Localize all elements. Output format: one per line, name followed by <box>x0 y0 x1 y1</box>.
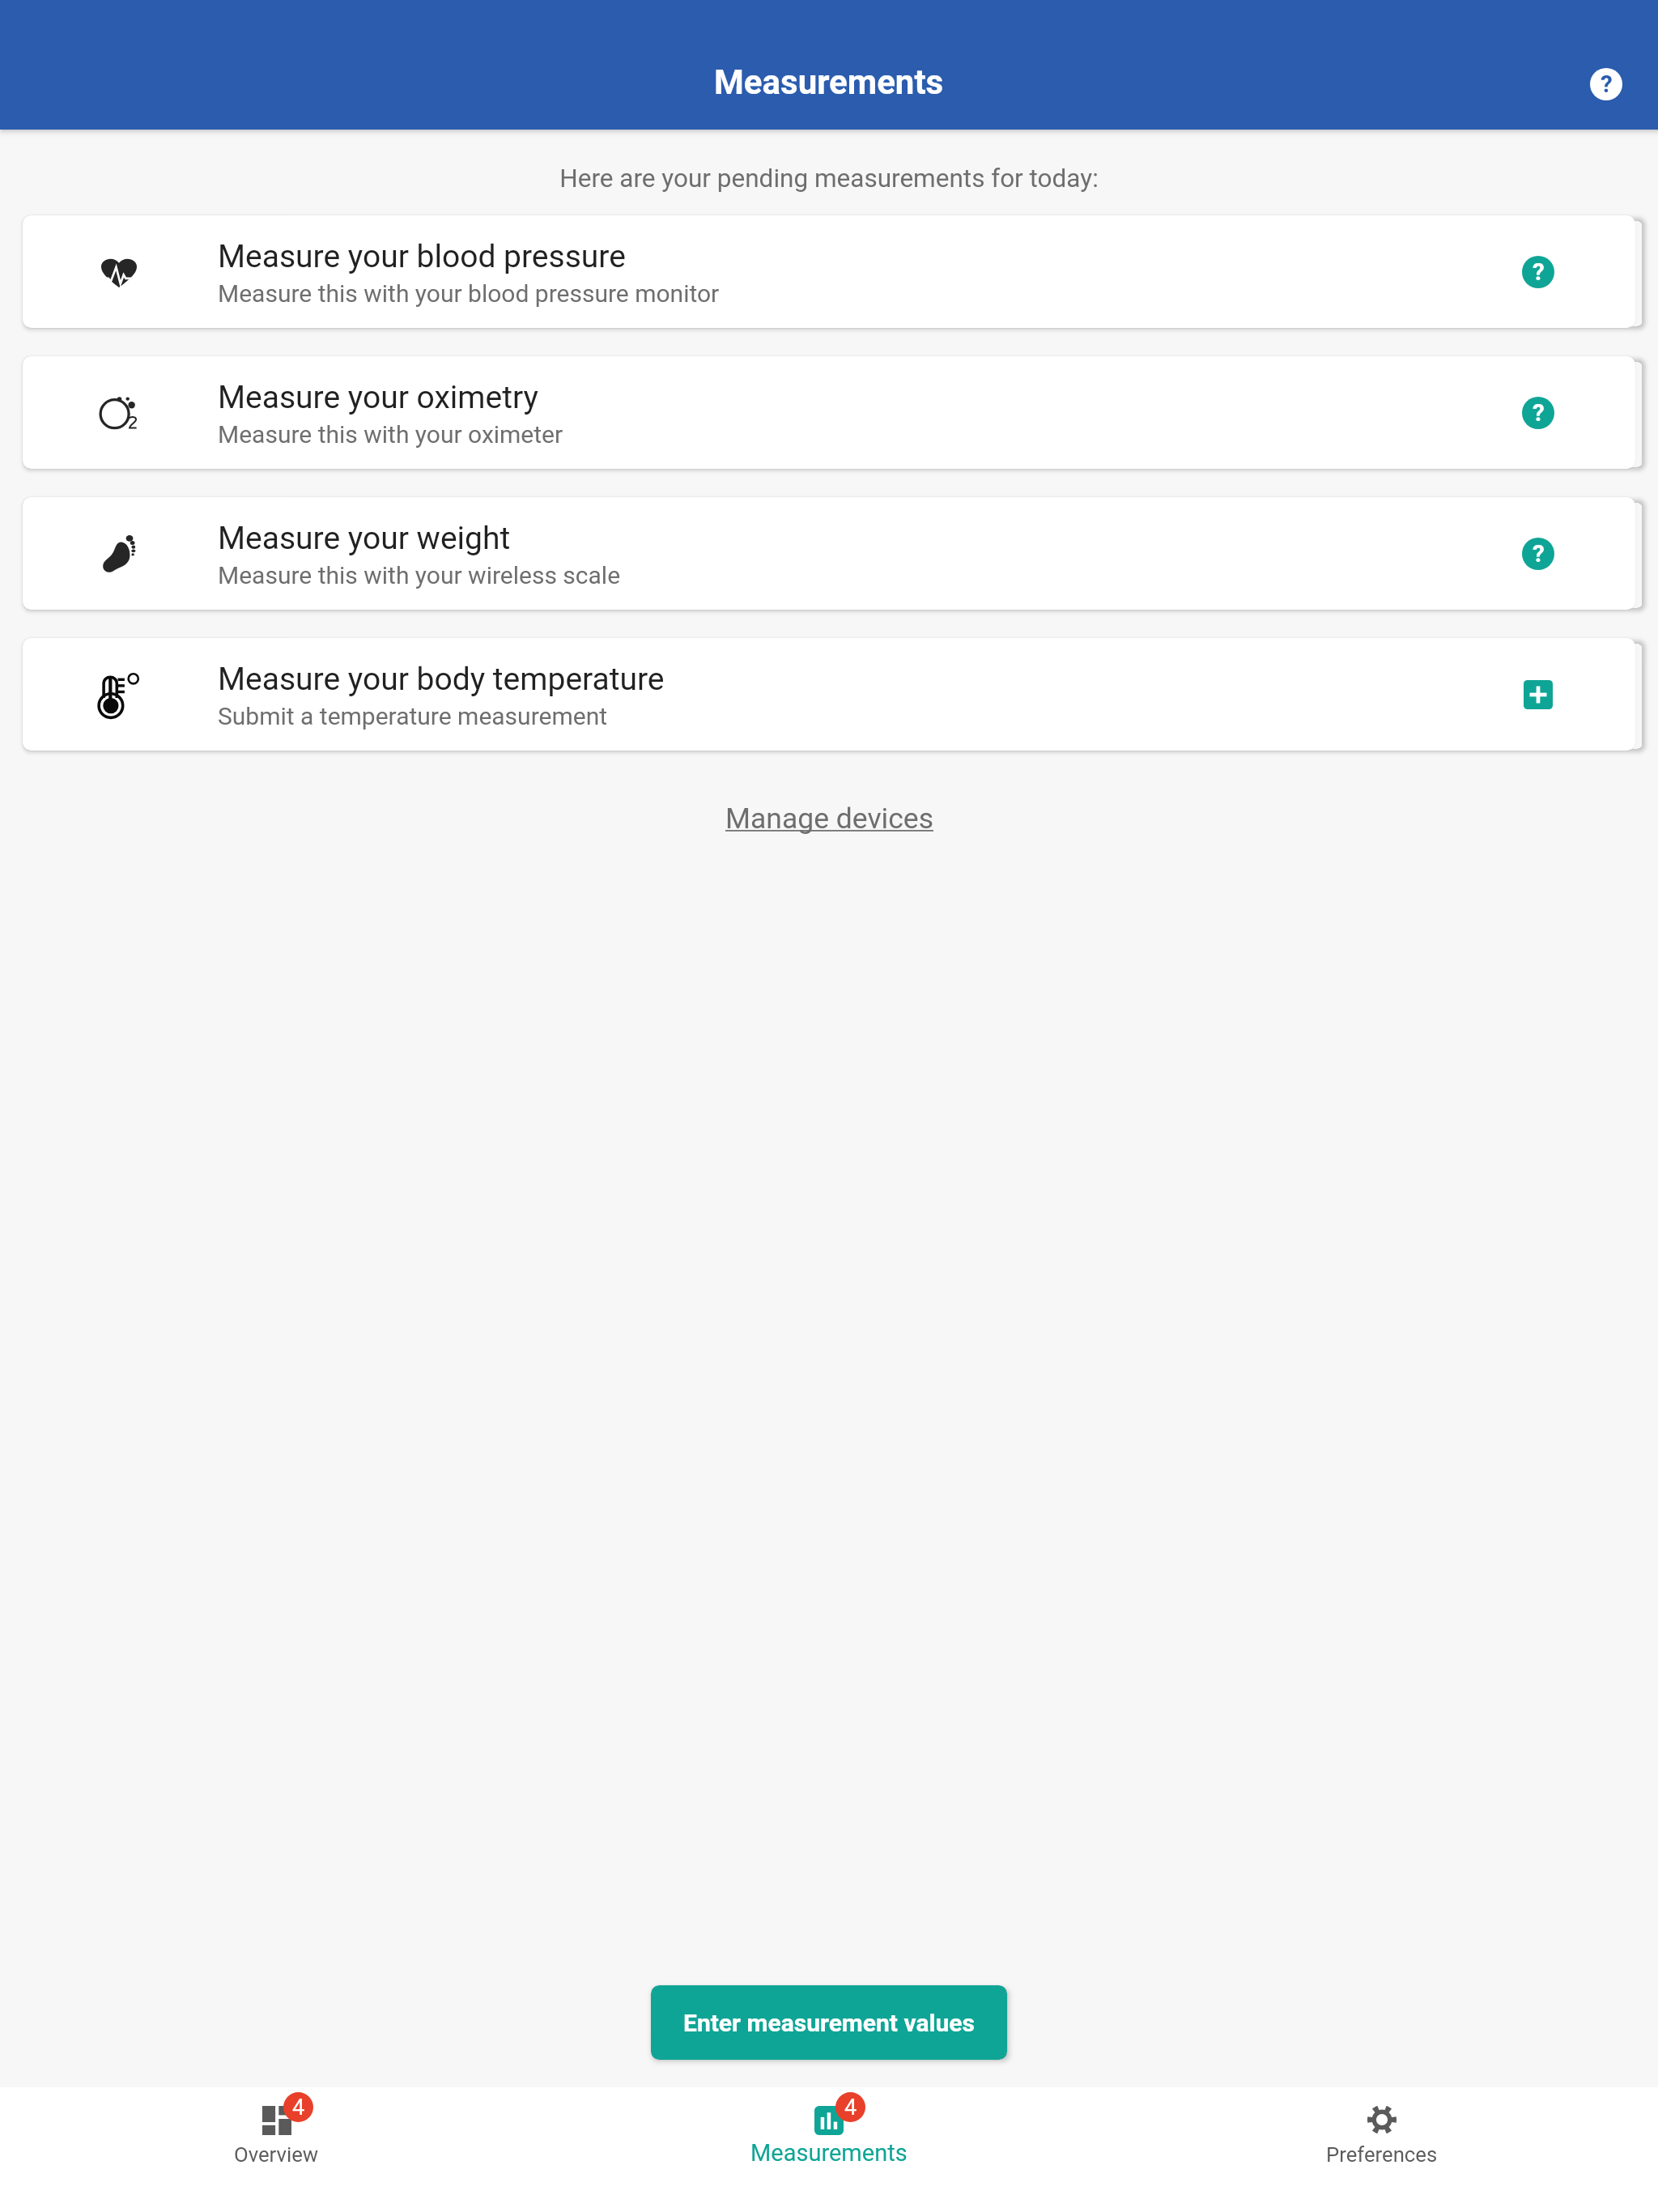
staticText: ? <box>1533 399 1545 428</box>
button[interactable]: 4 <box>552 2087 1105 2212</box>
button[interactable]: Measure your blood pressure <box>23 215 1635 328</box>
staticText: ? <box>1601 70 1613 99</box>
button[interactable]: Help <box>1509 243 1567 301</box>
button[interactable]: 4 <box>0 2087 552 2212</box>
staticText: 4 <box>844 2095 857 2121</box>
staticText: Measure your weight <box>218 520 511 557</box>
staticText: Preferences <box>1326 2142 1438 2167</box>
staticText: Enter measurement values <box>683 2009 975 2037</box>
staticText: Measure this with your blood pressure mo… <box>218 279 720 308</box>
staticText: Overview <box>234 2142 319 2167</box>
staticText: Measure your oximetry <box>218 379 538 416</box>
button[interactable]: Measure your weight <box>23 497 1635 610</box>
staticText: Measure your body temperature <box>218 661 665 698</box>
button[interactable]: Measure your body temperature <box>23 638 1635 751</box>
staticText: Measure this with your wireless scale <box>218 561 621 589</box>
staticText: 4 <box>292 2095 305 2121</box>
staticText: Measurements <box>714 62 944 102</box>
button[interactable]: Help <box>1577 55 1635 113</box>
staticText: ? <box>1533 258 1545 287</box>
button[interactable]: Measure your oximetry <box>23 356 1635 469</box>
button[interactable]: Enter measurement values <box>651 1985 1007 2060</box>
button[interactable]: Preferences <box>1105 2087 1658 2212</box>
button[interactable]: Manage devices <box>725 802 933 836</box>
staticText: Submit a temperature measurement <box>218 702 608 730</box>
button[interactable]: Help <box>1509 384 1567 442</box>
button[interactable]: Help <box>1509 525 1567 583</box>
staticText: Measure this with your oximeter <box>218 420 563 449</box>
staticText: ? <box>1533 540 1545 568</box>
staticText: Measurements <box>750 2139 908 2167</box>
staticText: Measure your blood pressure <box>218 238 626 275</box>
button[interactable]: Add measurement <box>1509 666 1567 724</box>
staticText: Here are your pending measurements for t… <box>0 164 1658 194</box>
